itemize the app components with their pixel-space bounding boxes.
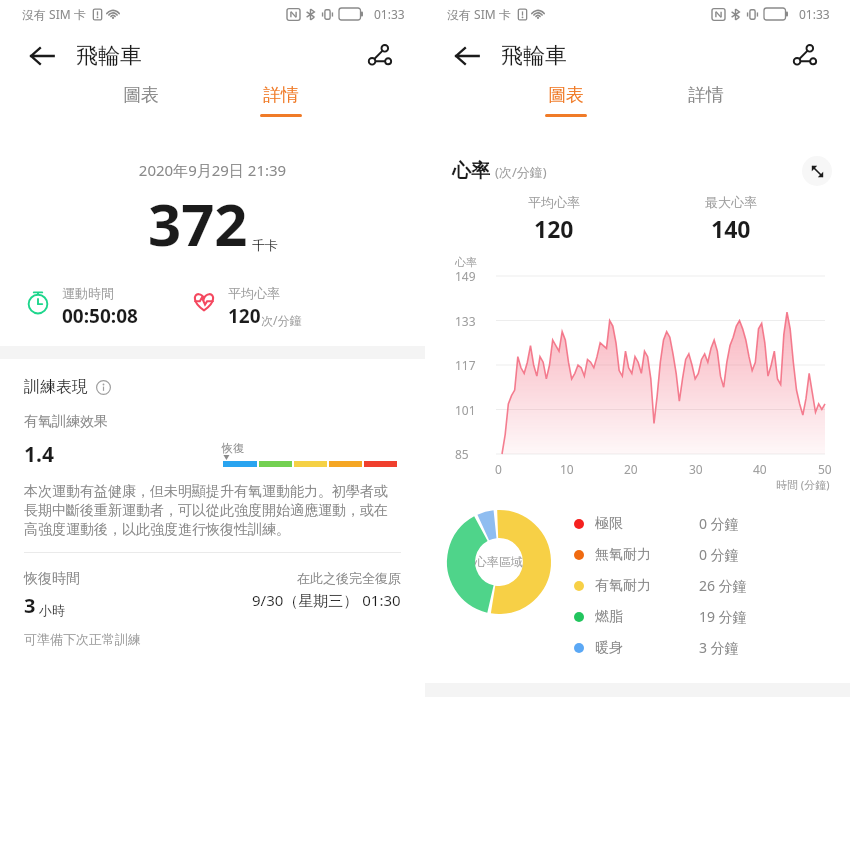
button[interactable]: Info [94, 378, 112, 396]
staticText: 40 [753, 461, 767, 477]
staticText: 01:33 [799, 6, 830, 22]
button[interactable]: 暖身 [574, 632, 850, 663]
staticText: 1.4 [24, 440, 54, 469]
button[interactable]: Expand chart [802, 156, 832, 186]
button[interactable]: 詳情 [675, 84, 737, 114]
staticText: 140 [711, 213, 751, 244]
staticText: 75 [343, 9, 353, 20]
staticText: 有氧耐力 [595, 577, 699, 595]
staticText: 120 [228, 303, 261, 329]
staticText: 20 [624, 461, 638, 477]
staticText: 飛輪車 [76, 42, 142, 70]
staticText: 心率 [455, 255, 477, 269]
staticText: 訓練表現 [24, 377, 88, 397]
staticText: 75 [768, 9, 778, 20]
staticText: 次/分鐘 [261, 312, 302, 328]
button[interactable]: Share [784, 35, 826, 77]
staticText: 小時 [39, 602, 65, 618]
button[interactable]: Back [447, 36, 487, 76]
staticText: 暖身 [595, 639, 699, 657]
staticText: 120 [534, 213, 574, 244]
staticText: 運動時間 [62, 285, 114, 301]
staticText: 149 [455, 268, 476, 284]
button[interactable]: 無氧耐力 [574, 539, 850, 570]
staticText: 可準備下次正常訓練 [24, 631, 141, 647]
button[interactable]: Back [22, 36, 62, 76]
button[interactable]: 有氧耐力 [574, 570, 850, 601]
staticText: 有氧訓練效果 [24, 413, 108, 431]
staticText: 10 [560, 461, 574, 477]
staticText: 2020年9月29日 21:39 [0, 160, 425, 180]
staticText: 圖表 [535, 84, 597, 107]
staticText: 85 [455, 446, 469, 462]
staticText: 心率區域 [475, 554, 523, 569]
staticText: 0 [495, 461, 502, 477]
staticText: 9/30（星期三） 01:30 [252, 590, 401, 610]
button[interactable]: 詳情 [250, 84, 312, 117]
staticText: 燃脂 [595, 608, 699, 626]
staticText: 沒有 SIM 卡 [22, 6, 86, 22]
staticText: 心率 [452, 159, 490, 183]
staticText: 01:33 [374, 6, 405, 22]
staticText: 117 [455, 357, 476, 373]
staticText: 00:50:08 [62, 303, 138, 329]
staticText: 極限 [595, 515, 699, 533]
button[interactable]: 圖表 [110, 84, 172, 114]
staticText: 平均心率 [228, 285, 280, 301]
staticText: 千卡 [252, 237, 278, 253]
staticText: 本次運動有益健康，但未明顯提升有氧運動能力。初學者或長期中斷後重新運動者，可以從… [24, 483, 401, 538]
staticText: 50 [818, 461, 832, 477]
staticText: 101 [455, 402, 476, 418]
staticText: 詳情 [250, 84, 312, 107]
staticText: 在此之後完全復原 [297, 570, 401, 586]
staticText: 372 [148, 184, 248, 263]
button[interactable]: 極限 [574, 508, 850, 539]
staticText: 恢復時間 [24, 570, 80, 588]
staticText: 時間 (分鐘) [776, 477, 830, 492]
button[interactable]: 燃脂 [574, 601, 850, 632]
staticText: 最大心率 [705, 194, 757, 210]
staticText: (次/分鐘) [495, 163, 547, 181]
staticText: 無氧耐力 [595, 546, 699, 564]
staticText: 3 分鐘 [699, 638, 739, 657]
staticText: 沒有 SIM 卡 [447, 6, 511, 22]
staticText: 30 [689, 461, 703, 477]
button[interactable]: Share [359, 35, 401, 77]
staticText: 26 分鐘 [699, 576, 747, 595]
staticText: 3 [24, 592, 36, 619]
staticText: 飛輪車 [501, 42, 567, 70]
staticText: 詳情 [675, 84, 737, 107]
staticText: 0 分鐘 [699, 514, 739, 533]
staticText: 恢復 [222, 441, 244, 455]
staticText: 圖表 [110, 84, 172, 107]
staticText: 0 分鐘 [699, 545, 739, 564]
staticText: 133 [455, 313, 476, 329]
button[interactable]: 圖表 [535, 84, 597, 117]
staticText: 平均心率 [528, 194, 580, 210]
staticText: 19 分鐘 [699, 607, 747, 626]
